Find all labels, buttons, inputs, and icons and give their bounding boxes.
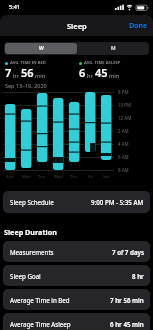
button[interactable]: W <box>5 43 77 54</box>
staticText: 56 <box>21 65 34 80</box>
staticText: 2 AM <box>118 128 129 134</box>
staticText: Mon <box>22 174 31 180</box>
staticText: Average Time Asleep <box>10 320 71 328</box>
staticText: Measurements <box>10 248 54 256</box>
staticText: 45 <box>95 65 108 80</box>
staticText: 4 AM <box>118 141 129 147</box>
staticText: Wed <box>54 174 63 180</box>
staticText: 7 hr 56 min <box>110 296 144 304</box>
button[interactable]: Sleep Goal <box>3 265 150 286</box>
staticText: M <box>111 45 116 52</box>
staticText: hr <box>87 72 93 79</box>
staticText: 7 of 7 days <box>112 248 144 256</box>
staticText: AVG. TIME ASLEEP <box>84 60 121 66</box>
staticText: AVG. TIME IN BED <box>10 60 46 66</box>
staticText: 8 hr <box>132 272 144 280</box>
button[interactable]: M <box>77 43 149 54</box>
staticText: Fri <box>88 174 93 180</box>
staticText: 6 AM <box>118 154 129 160</box>
staticText: Sun <box>6 174 14 180</box>
button[interactable]: Sleep Schedule <box>3 191 150 213</box>
staticText: Thu <box>70 174 78 180</box>
button[interactable]: Average Time in Bed <box>3 289 150 310</box>
staticText: Sat <box>103 174 110 180</box>
button[interactable]: Measurements <box>3 241 150 262</box>
button[interactable]: Average Time Asleep <box>3 313 150 330</box>
staticText: Tue <box>38 174 46 180</box>
staticText: Sleep Duration <box>4 227 57 237</box>
staticText: 8 PM <box>118 89 129 95</box>
button[interactable]: Done <box>129 21 148 31</box>
staticText: hr <box>13 72 19 79</box>
staticText: Sleep Schedule <box>10 198 54 206</box>
staticText: 12 AM <box>118 115 132 121</box>
staticText: 8 AM <box>118 167 129 173</box>
staticText: Sep 13–19, 2020 <box>5 82 47 89</box>
staticText: 7 <box>5 65 12 80</box>
staticText: Average Time in Bed <box>10 296 70 304</box>
staticText: min <box>109 72 120 79</box>
staticText: 10 PM <box>118 102 132 108</box>
staticText: Done <box>129 21 148 31</box>
staticText: 9:00 PM - 5:35 AM <box>91 198 144 206</box>
staticText: min <box>35 72 46 79</box>
staticText: 5:41 <box>9 3 20 10</box>
staticText: Sleep <box>67 21 87 31</box>
staticText: W <box>39 45 44 52</box>
staticText: 6 hr 45 min <box>110 320 144 328</box>
staticText: 6 <box>79 65 86 80</box>
staticText: Sleep Goal <box>10 272 41 280</box>
